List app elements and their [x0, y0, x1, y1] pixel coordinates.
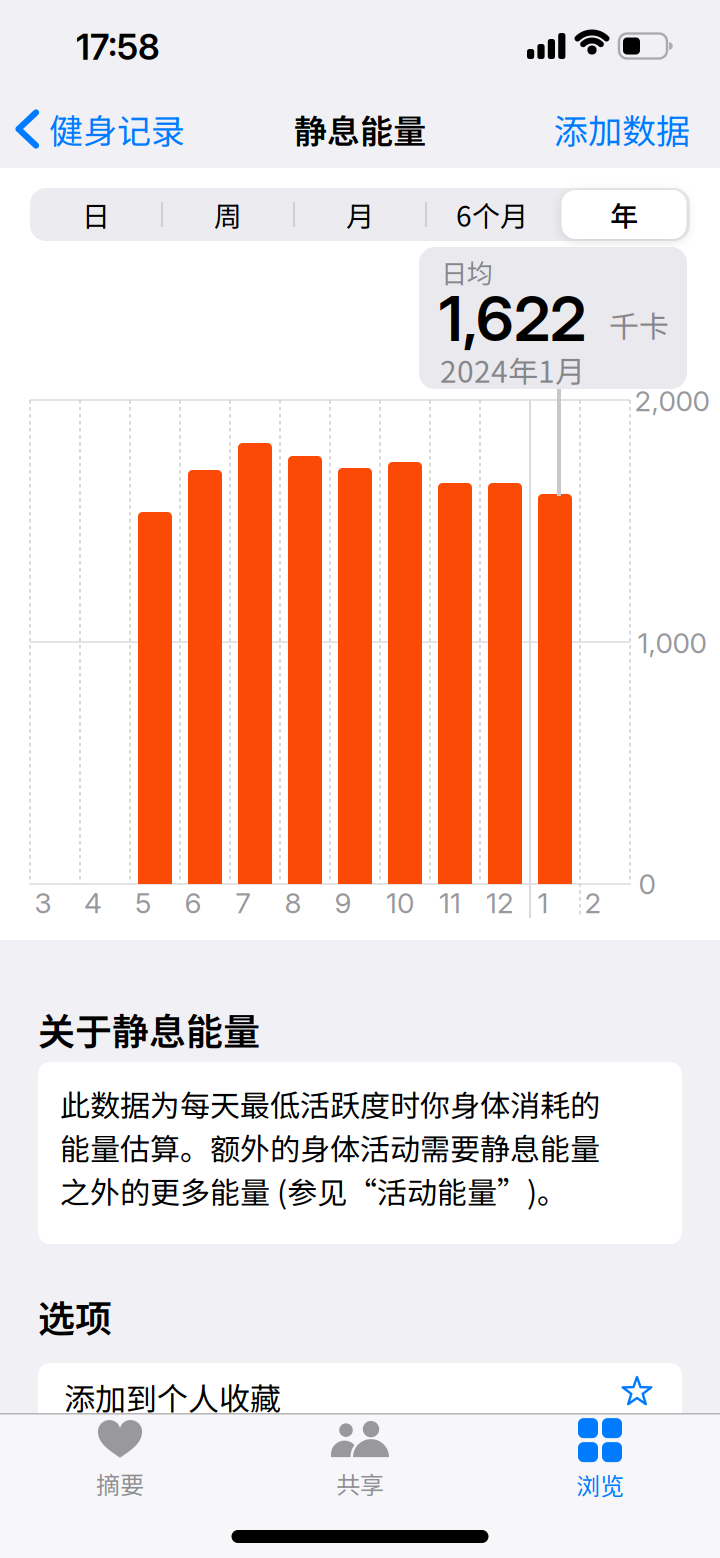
staticText: 9 [334, 886, 351, 920]
button[interactable]: 6个月 [426, 188, 558, 241]
staticText: 4 [84, 886, 102, 920]
button[interactable]: 摘要 [40, 1418, 200, 1502]
staticText: 3 [34, 886, 51, 920]
staticText: 6 [184, 886, 201, 920]
staticText: 1,000 [637, 626, 706, 660]
staticText: 此数据为每天最低活跃度时你身体消耗的 能量估算。额外的身体活动需要静息能量 之外… [60, 1082, 600, 1212]
staticText: 选项 [38, 1289, 112, 1343]
staticText: 共享 [336, 1466, 384, 1501]
staticText: 添加数据 [554, 104, 690, 154]
staticText: 7 [235, 886, 250, 920]
staticText: 2024年1月 [440, 348, 585, 391]
button[interactable]: 添加到个人收藏 [38, 1363, 682, 1473]
staticText: 静息能量 [294, 105, 426, 153]
button[interactable]: 共享 [280, 1418, 440, 1502]
staticText: 关于静息能量 [38, 1002, 260, 1056]
staticText: 2,000 [634, 384, 709, 418]
staticText: 10 [386, 886, 414, 920]
button[interactable]: 月 [294, 188, 426, 241]
button[interactable]: 健身记录 [16, 104, 185, 154]
staticText: 12 [486, 886, 514, 920]
staticText: 2 [584, 886, 601, 920]
staticText: 11 [439, 886, 461, 920]
staticText: 17:58 [76, 26, 160, 68]
staticText: 摘要 [96, 1466, 144, 1501]
staticText: 1,622 [439, 281, 586, 356]
button[interactable]: 浏览 [520, 1418, 680, 1502]
button[interactable]: 年 [558, 188, 690, 241]
staticText: 5 [135, 886, 151, 920]
staticText: 8 [284, 886, 301, 920]
staticText: 年 [610, 194, 638, 235]
button[interactable]: 日 [30, 188, 162, 241]
staticText: 健身记录 [49, 104, 185, 154]
staticText: 1 [537, 886, 548, 920]
button[interactable]: 周 [162, 188, 294, 241]
staticText: 日 [82, 194, 110, 235]
button[interactable]: 添加数据 [554, 104, 690, 154]
staticText: 周 [214, 194, 242, 235]
staticText: 浏览 [576, 1467, 624, 1502]
staticText: 添加到个人收藏 [64, 1375, 281, 1419]
staticText: 千卡 [609, 303, 669, 346]
staticText: 日均 [441, 253, 493, 291]
staticText: 月 [346, 194, 374, 235]
staticText: 0 [638, 867, 655, 901]
staticText: 6个月 [456, 194, 528, 235]
